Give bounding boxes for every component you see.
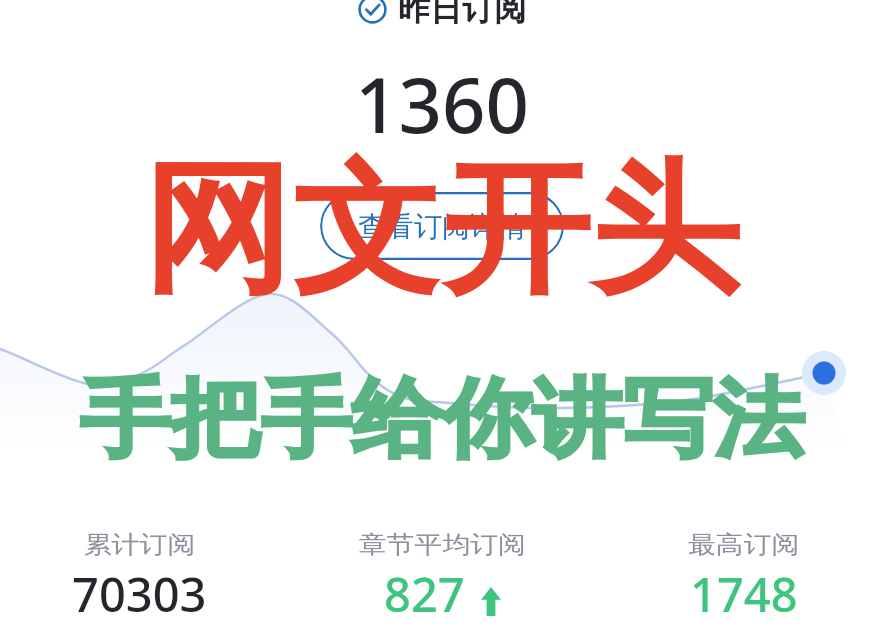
staticText: 最高订阅 <box>688 529 800 560</box>
staticText: 网文开头 <box>142 141 740 320</box>
staticText: 累计订阅 <box>84 529 196 560</box>
button[interactable]: Latest data point <box>802 351 846 395</box>
button[interactable]: 累计订阅 <box>0 521 287 626</box>
staticText: 70303 <box>72 562 207 626</box>
staticText: 查看订阅详情 <box>358 209 526 244</box>
button[interactable]: 查看订阅详情 <box>320 192 564 260</box>
staticText: 1748 <box>690 562 798 626</box>
button[interactable]: 昨日订阅 <box>358 0 526 29</box>
staticText: 1360 <box>355 52 529 156</box>
staticText: 827 <box>384 562 465 626</box>
staticText: 昨日订阅 <box>398 0 526 29</box>
button[interactable]: 最高订阅 <box>597 521 883 626</box>
staticText: 章节平均订阅 <box>359 529 526 560</box>
staticText: 手把手给你讲写法 <box>80 366 804 473</box>
button[interactable]: 章节平均订阅 <box>295 521 589 626</box>
